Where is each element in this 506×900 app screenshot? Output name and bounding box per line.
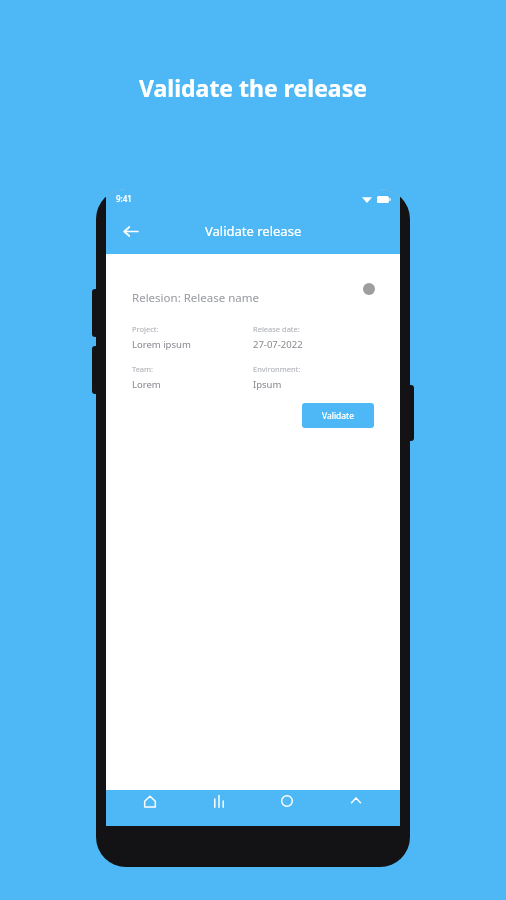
- button[interactable]: Validate: [302, 403, 374, 428]
- staticText: 27-07-2022: [253, 338, 303, 351]
- button[interactable]: More: [332, 790, 380, 826]
- staticText: Lorem: [132, 378, 161, 391]
- staticText: Validate: [322, 410, 354, 422]
- button[interactable]: Relesion: Release name: [116, 268, 390, 454]
- button[interactable]: History: [263, 790, 311, 826]
- staticText: Validate release: [205, 222, 302, 240]
- staticText: Relesion: Release name: [132, 290, 260, 306]
- staticText: 9:41: [116, 193, 132, 204]
- staticText: Team:: [132, 364, 154, 374]
- button[interactable]: Home: [126, 790, 174, 826]
- staticText: Release date:: [253, 324, 300, 334]
- button[interactable]: Stats: [195, 790, 243, 826]
- staticText: Environment:: [253, 364, 301, 374]
- button[interactable]: Back: [114, 215, 146, 247]
- staticText: Project:: [132, 324, 159, 334]
- staticText: Ipsum: [253, 378, 282, 391]
- staticText: Validate the release: [139, 72, 367, 103]
- staticText: Lorem ipsum: [132, 338, 191, 351]
